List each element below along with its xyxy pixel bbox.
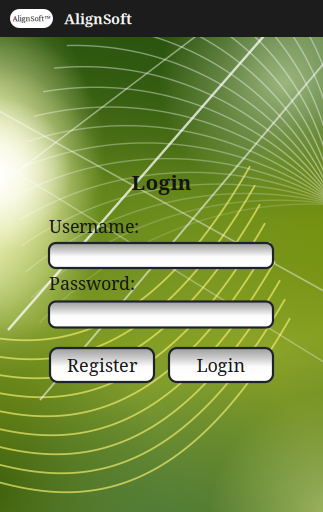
button[interactable]: Login (169, 348, 273, 382)
staticText: AlignSoft (64, 8, 132, 28)
button[interactable]: Register (50, 348, 154, 382)
staticText: AlignSoft™ (12, 14, 50, 23)
staticText: Password: (49, 271, 135, 295)
staticText: Register (67, 353, 137, 377)
staticText: Login (196, 353, 245, 377)
staticText: Login (131, 168, 191, 196)
staticText: Username: (49, 214, 139, 238)
